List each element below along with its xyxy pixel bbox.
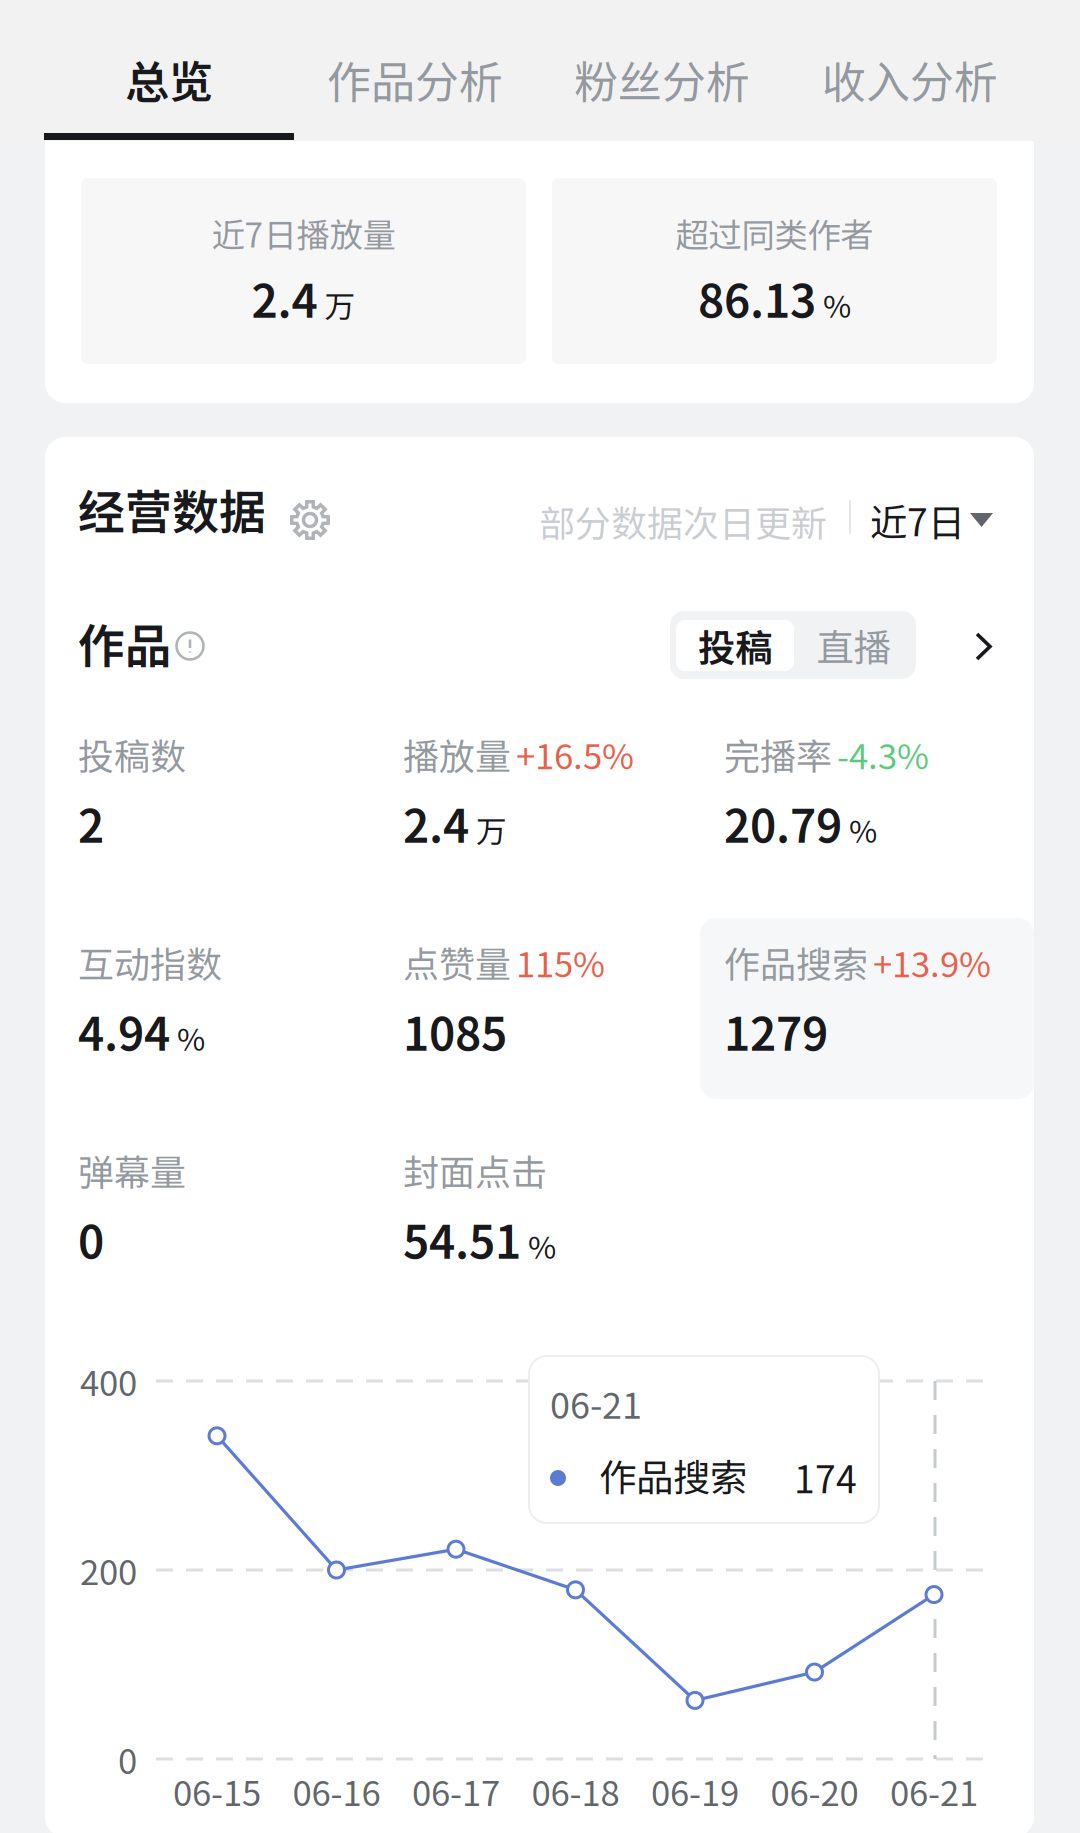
staticText: 互动指数 (78, 936, 222, 988)
staticText: 174 (794, 1450, 857, 1504)
staticText: 06-20 (770, 1766, 858, 1816)
staticText: 2 (78, 790, 104, 856)
staticText: 作品搜索 (599, 1448, 747, 1502)
staticText: 万 (324, 282, 355, 327)
button[interactable]: 封面点击 (403, 1144, 713, 1284)
staticText: 1279 (724, 998, 828, 1064)
staticText: 播放量 (403, 728, 511, 780)
staticText: 封面点击 (403, 1144, 547, 1196)
staticText: 0 (118, 1734, 137, 1784)
staticText: +16.5% (516, 729, 634, 779)
staticText: 投稿数 (78, 728, 186, 780)
staticText: 200 (80, 1545, 137, 1595)
staticText: 86.13 (698, 265, 816, 331)
staticText: 近7日播放量 (211, 209, 395, 257)
button[interactable]: 近7日 (870, 493, 993, 547)
staticText: 投稿 (698, 618, 772, 673)
staticText: % (849, 807, 877, 851)
staticText: 54.51 (403, 1206, 521, 1272)
button[interactable]: 播放量 (403, 728, 713, 868)
button[interactable]: 作品分析 (290, 35, 540, 123)
staticText: 万 (476, 807, 507, 851)
staticText: 06-21 (550, 1377, 642, 1429)
button[interactable]: 作品搜索 (724, 936, 1034, 1076)
staticText: 06-21 (890, 1766, 978, 1816)
staticText: 总览 (125, 47, 213, 111)
button[interactable]: 投稿数 (78, 728, 388, 868)
staticText: 06-17 (412, 1766, 500, 1816)
staticText: 近7日 (870, 493, 965, 547)
staticText: 作品搜索 (724, 936, 868, 988)
button[interactable]: 更多 (975, 632, 992, 661)
button[interactable]: 设置 (290, 500, 330, 540)
staticText: 直播 (816, 618, 890, 672)
staticText: 06-15 (173, 1766, 261, 1816)
staticText: 作品分析 (327, 47, 503, 111)
staticText: 06-16 (292, 1766, 380, 1816)
staticText: +13.9% (873, 937, 991, 987)
button[interactable]: 完播率 (724, 728, 1034, 868)
staticText: 0 (78, 1206, 104, 1272)
button[interactable]: 收入分析 (785, 35, 1035, 123)
button[interactable]: 互动指数 (78, 936, 388, 1076)
staticText: 点赞量 (403, 936, 511, 988)
staticText: 2.4 (403, 790, 469, 856)
staticText: 收入分析 (822, 47, 998, 111)
staticText: 粉丝分析 (574, 47, 750, 111)
staticText: % (177, 1015, 205, 1059)
button[interactable]: 直播 (797, 620, 910, 670)
staticText: -4.3% (837, 729, 929, 779)
button[interactable]: 总览 (44, 35, 294, 123)
staticText: 部分数据次日更新 (539, 495, 827, 547)
button[interactable]: 弹幕量 (78, 1144, 388, 1284)
staticText: % (528, 1223, 556, 1267)
staticText: 超过同类作者 (675, 209, 873, 257)
staticText: 06-19 (651, 1766, 739, 1816)
staticText: % (823, 282, 851, 327)
staticText: 1085 (403, 998, 507, 1064)
staticText: 弹幕量 (78, 1144, 186, 1196)
staticText: 115% (516, 937, 605, 987)
staticText: 400 (80, 1356, 137, 1406)
staticText: 完播率 (724, 728, 832, 780)
button[interactable]: 粉丝分析 (537, 35, 787, 123)
staticText: 作品 (78, 609, 172, 677)
button[interactable]: 点赞量 (403, 936, 713, 1076)
staticText: 4.94 (78, 998, 170, 1064)
staticText: 2.4 (251, 265, 317, 331)
staticText: 06-18 (531, 1766, 619, 1816)
button[interactable]: 投稿 (676, 620, 794, 671)
staticText: 20.79 (724, 790, 842, 856)
staticText: 经营数据 (78, 475, 266, 543)
